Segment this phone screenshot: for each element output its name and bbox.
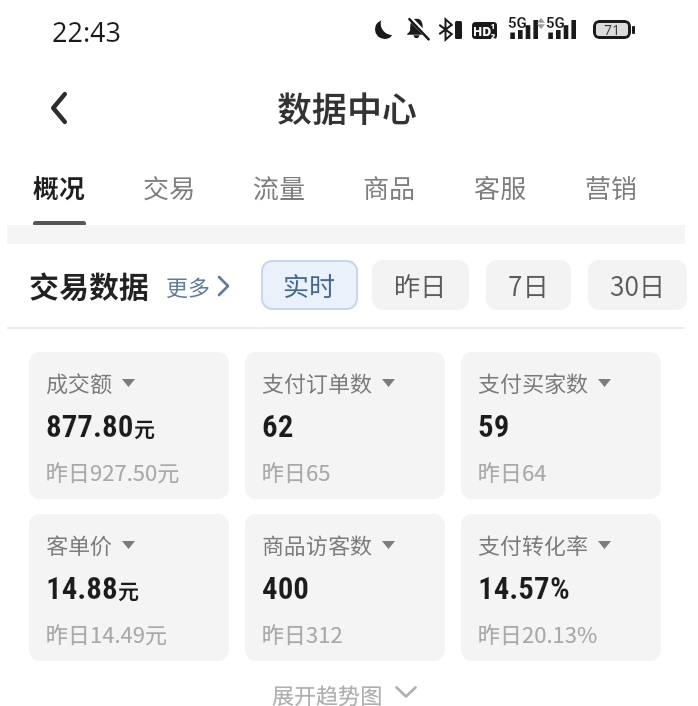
button[interactable]: 展开趋势图 xyxy=(272,678,417,706)
staticText: 昨日65 xyxy=(262,455,331,487)
staticText: 59 xyxy=(478,408,510,444)
staticText: 877.80 xyxy=(46,408,134,444)
staticText: 交易数据 xyxy=(29,263,149,306)
button[interactable]: 概况 xyxy=(4,168,114,222)
staticText: 14.88 xyxy=(46,570,118,606)
staticText: 更多 xyxy=(166,270,211,302)
staticText: % xyxy=(550,570,570,606)
staticText: 流量 xyxy=(253,168,306,206)
button[interactable]: 昨日 xyxy=(372,260,469,310)
button[interactable]: 客服 xyxy=(445,168,556,222)
staticText: 成交额 xyxy=(46,366,113,398)
staticText: 元 xyxy=(134,413,155,443)
button[interactable]: 30日 xyxy=(588,260,687,310)
staticText: 昨日20.13% xyxy=(478,617,598,649)
staticText: 昨日312 xyxy=(262,617,343,649)
button[interactable]: 支付转化率 xyxy=(461,514,661,661)
staticText: 1 xyxy=(491,22,496,32)
button[interactable]: 营销 xyxy=(556,168,667,222)
button[interactable]: 支付买家数 xyxy=(461,352,661,499)
staticText: 22:43 xyxy=(52,13,122,50)
button[interactable]: 支付订单数 xyxy=(245,352,445,499)
button[interactable]: 商品访客数 xyxy=(245,514,445,661)
staticText: 商品访客数 xyxy=(262,528,373,560)
button[interactable]: 实时 xyxy=(261,260,358,310)
staticText: 2 xyxy=(491,32,496,39)
staticText: 客单价 xyxy=(46,528,113,560)
staticText: 支付转化率 xyxy=(478,528,589,560)
staticText: 7日 xyxy=(508,266,549,304)
staticText: 支付订单数 xyxy=(262,366,373,398)
staticText: HD xyxy=(473,23,491,39)
staticText: 5G xyxy=(508,14,527,32)
button[interactable]: 客单价 xyxy=(29,514,229,661)
staticText: 昨日14.49元 xyxy=(46,617,167,649)
staticText: 5G xyxy=(546,14,565,32)
staticText: 400 xyxy=(262,570,309,606)
button[interactable]: 成交额 xyxy=(29,352,229,499)
button[interactable]: 商品 xyxy=(334,168,445,222)
staticText: 概况 xyxy=(33,168,86,206)
staticText: 实时 xyxy=(283,266,336,304)
staticText: 数据中心 xyxy=(277,81,418,132)
staticText: 交易 xyxy=(143,168,196,206)
button[interactable]: 7日 xyxy=(486,260,571,310)
staticText: 昨日64 xyxy=(478,455,547,487)
button[interactable]: 交易 xyxy=(114,168,224,222)
button[interactable]: 流量 xyxy=(224,168,334,222)
staticText: 营销 xyxy=(585,168,638,206)
button[interactable]: 更多 xyxy=(166,270,229,302)
staticText: 商品 xyxy=(363,168,416,206)
staticText: 昨日 xyxy=(394,266,447,304)
staticText: 14.57 xyxy=(478,570,550,606)
staticText: 71 xyxy=(604,20,621,39)
staticText: 客服 xyxy=(474,168,527,206)
staticText: 昨日927.50元 xyxy=(46,455,180,487)
staticText: 30日 xyxy=(610,266,665,304)
button[interactable]: Back xyxy=(36,85,82,131)
staticText: 62 xyxy=(262,408,294,444)
staticText: 展开趋势图 xyxy=(272,678,383,706)
staticText: 元 xyxy=(118,575,139,605)
staticText: 支付买家数 xyxy=(478,366,589,398)
